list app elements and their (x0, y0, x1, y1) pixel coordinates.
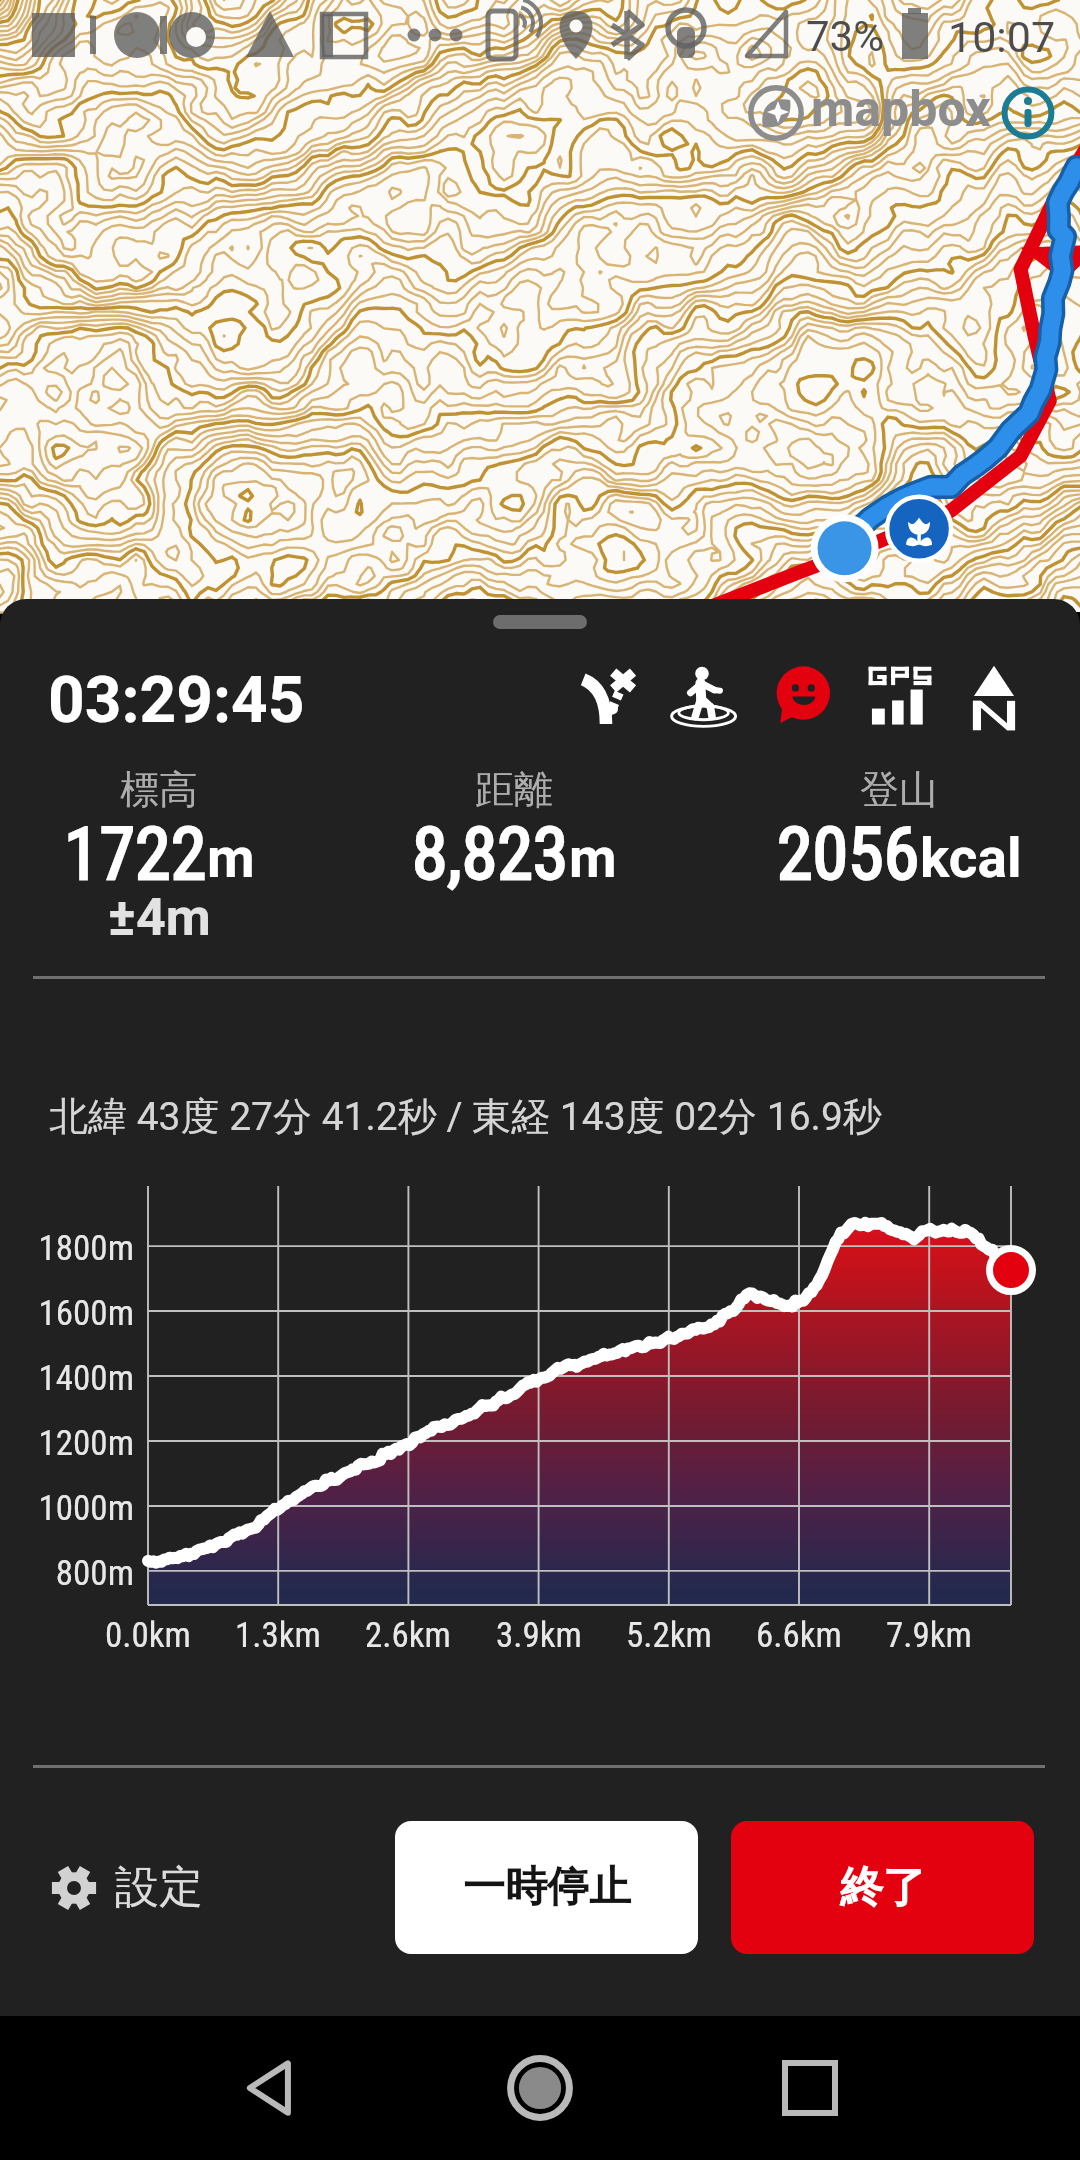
button[interactable]: Home (480, 2028, 600, 2148)
staticText: 8,823 (412, 812, 569, 896)
button[interactable]: Walking mode (664, 662, 744, 732)
staticText: 03:29:45 (48, 663, 305, 738)
staticText: 1200m (0, 1423, 134, 1464)
button[interactable]: GPS signal (866, 662, 932, 730)
staticText: m (569, 826, 617, 890)
button[interactable]: Condition (769, 663, 835, 727)
staticText: 標高 (120, 765, 198, 814)
staticText: 設定 (115, 1860, 203, 1915)
other: Map attribution info (1002, 87, 1054, 139)
button[interactable]: 設定 (36, 1848, 217, 1927)
staticText: 登山 (860, 765, 938, 814)
button[interactable]: Route guidance off (576, 663, 636, 733)
staticText: 73% (806, 12, 884, 61)
staticText: 2.6km (333, 1615, 483, 1656)
staticText: m (207, 826, 255, 890)
staticText: 一時停止 (463, 1861, 631, 1914)
staticText: 1722 (64, 812, 207, 896)
staticText: 1800m (0, 1228, 134, 1269)
staticText: 1600m (0, 1293, 134, 1334)
staticText: 距離 (475, 765, 553, 814)
button[interactable]: Recents (750, 2028, 870, 2148)
button[interactable]: North up (972, 662, 1016, 732)
staticText: ±4m (108, 887, 211, 948)
staticText: 10:07 (948, 12, 1056, 62)
staticText: 1.3km (203, 1615, 353, 1656)
staticText: 北緯 43度 27分 41.2秒 / 東経 143度 02分 16.9秒 (49, 1092, 882, 1141)
button[interactable]: Back (210, 2028, 330, 2148)
staticText: mapbox (811, 80, 991, 139)
button[interactable]: 一時停止 (395, 1821, 698, 1954)
staticText: kcal (920, 826, 1022, 890)
staticText: 終了 (840, 1861, 926, 1915)
staticText: 800m (0, 1553, 134, 1594)
staticText: 2056 (777, 812, 920, 896)
staticText: 5.2km (594, 1615, 744, 1656)
staticText: 7.9km (854, 1615, 1004, 1656)
button[interactable]: 終了 (731, 1821, 1034, 1954)
staticText: 3.9km (464, 1615, 614, 1656)
staticText: 1400m (0, 1358, 134, 1399)
staticText: 1000m (0, 1488, 134, 1529)
staticText: 6.6km (724, 1615, 874, 1656)
staticText: 0.0km (73, 1615, 223, 1656)
